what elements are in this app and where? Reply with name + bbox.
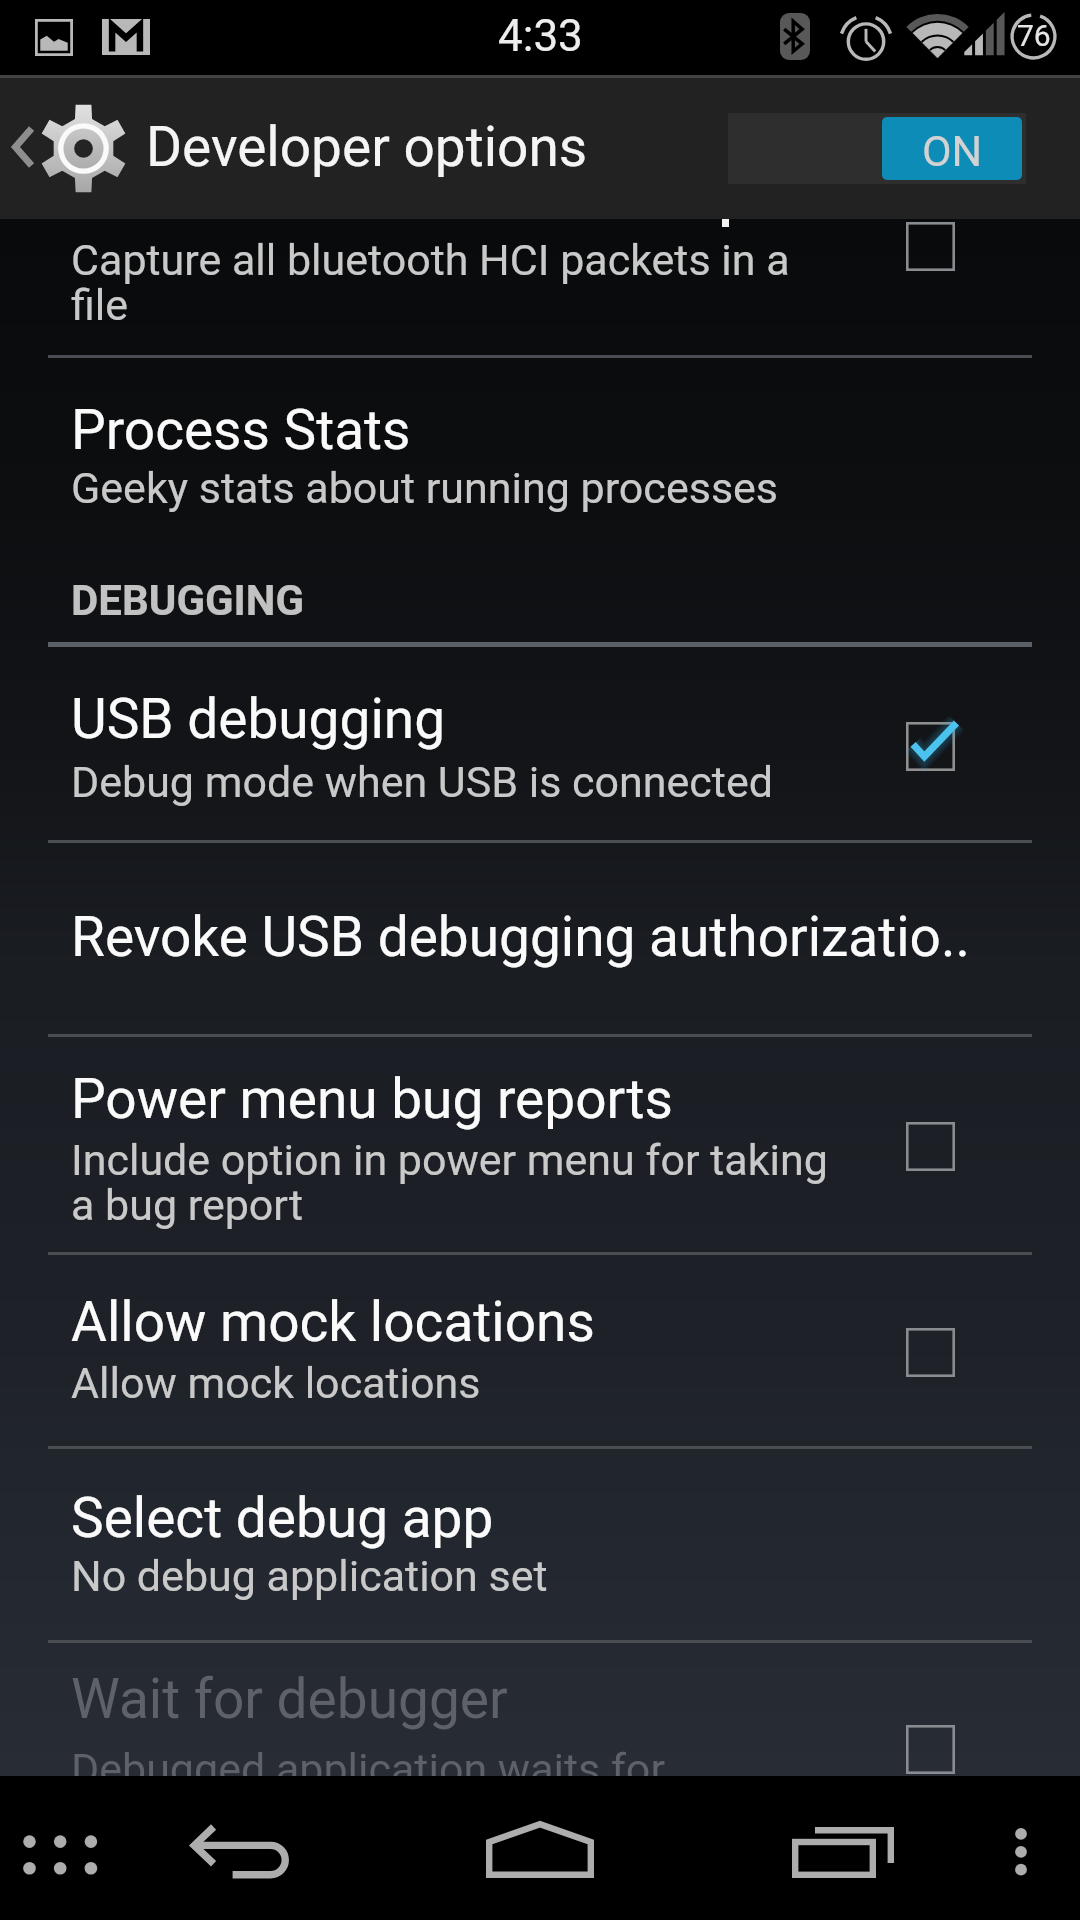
staticText: Debugged application waits for: [71, 1744, 665, 1794]
button[interactable]: Navigate up: [0, 75, 1080, 219]
staticText: Allow mock locations: [71, 1290, 595, 1354]
staticText: Wait for debugger: [71, 1667, 508, 1731]
button[interactable]: More options: [960, 1776, 1080, 1920]
button[interactable]: USB debugging: [0, 649, 1080, 843]
staticText: Debug mode when USB is connected: [71, 757, 773, 807]
button[interactable]: Home: [446, 1776, 636, 1920]
button[interactable]: Select debug app: [0, 1449, 1080, 1643]
staticText: Include option in power menu for taking …: [71, 1135, 828, 1230]
button[interactable]: Wait for debugger: [0, 1643, 1080, 1776]
staticText: 76: [1017, 18, 1051, 53]
staticText: Select debug app: [71, 1486, 494, 1550]
button[interactable]: Revoke USB debugging authorizatio..: [0, 843, 1080, 1037]
button[interactable]: Recent apps: [752, 1776, 942, 1920]
staticText: Developer options: [146, 115, 588, 179]
button[interactable]: Capture all bluetooth HCI packets in a f…: [0, 219, 1080, 358]
button[interactable]: Power menu bug reports: [0, 1037, 1080, 1255]
staticText: Revoke USB debugging authorizatio..: [71, 905, 970, 969]
staticText: Power menu bug reports: [71, 1067, 673, 1131]
button[interactable]: Back: [160, 1776, 320, 1920]
button[interactable]: Switch input method: [0, 1776, 150, 1920]
staticText: Geeky stats about running processes: [71, 463, 779, 513]
staticText: 4:33: [498, 10, 583, 62]
staticText: USB debugging: [71, 687, 446, 751]
staticText: ON: [922, 126, 983, 176]
button[interactable]: Process Stats: [0, 358, 1080, 565]
staticText: Allow mock locations: [71, 1358, 481, 1408]
staticText: Capture all bluetooth HCI packets in a f…: [71, 235, 790, 330]
staticText: No debug application set: [71, 1551, 548, 1601]
staticText: Process Stats: [71, 398, 411, 462]
button[interactable]: Developer options on: [728, 113, 1026, 184]
staticText: DEBUGGING: [71, 576, 305, 625]
button[interactable]: Allow mock locations: [0, 1255, 1080, 1449]
